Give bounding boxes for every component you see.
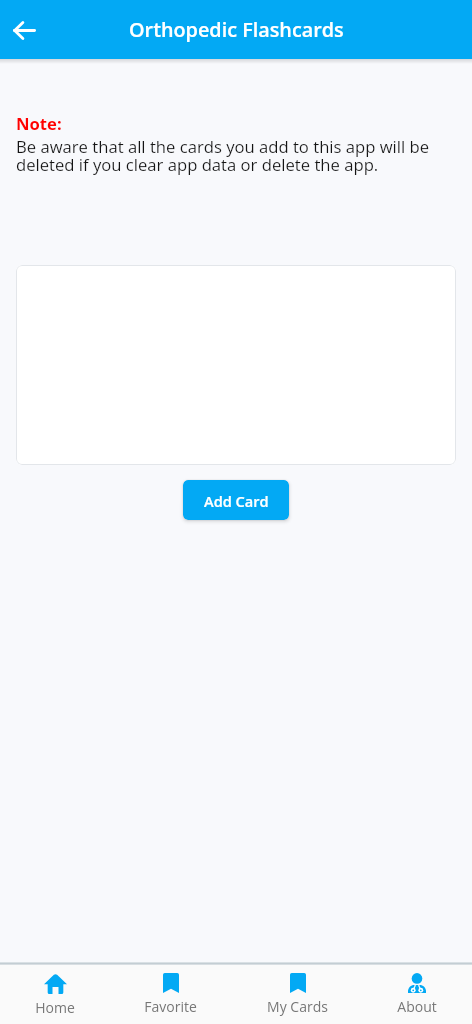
- staticText: Be aware that all the cards you add to t…: [16, 135, 456, 176]
- button[interactable]: Home: [35, 973, 75, 1017]
- staticText: Favorite: [144, 997, 197, 1016]
- staticText: About: [397, 997, 437, 1016]
- staticText: Note:: [16, 112, 62, 135]
- button[interactable]: [16, 265, 456, 465]
- button[interactable]: My Cards: [267, 973, 328, 1016]
- button[interactable]: About: [397, 973, 437, 1016]
- staticText: Orthopedic Flashcards: [129, 16, 344, 43]
- staticText: Home: [35, 998, 75, 1017]
- button[interactable]: Back: [2, 8, 46, 52]
- button[interactable]: Add Card: [183, 480, 289, 520]
- button[interactable]: Favorite: [144, 973, 197, 1016]
- staticText: My Cards: [267, 997, 328, 1016]
- staticText: Add Card: [204, 491, 269, 511]
